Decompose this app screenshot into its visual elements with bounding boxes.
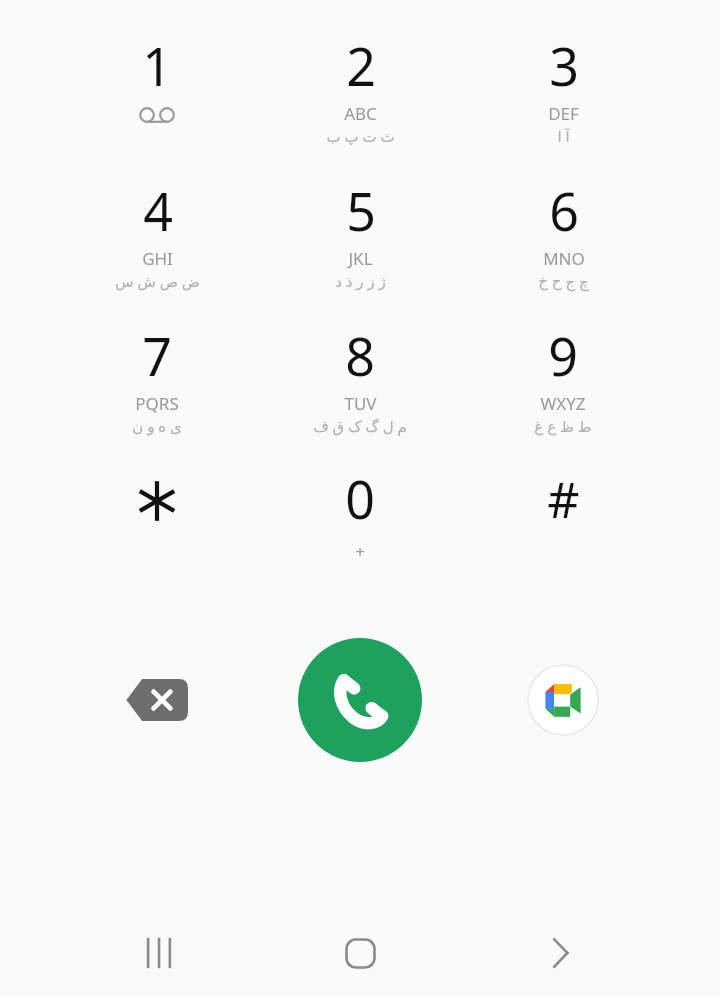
staticText: GHI xyxy=(142,247,173,270)
staticText: 7 xyxy=(142,320,172,391)
staticText: 8 xyxy=(345,320,375,391)
button[interactable]: 1 xyxy=(62,30,252,160)
staticText: ث ت پ ب xyxy=(326,126,395,146)
staticText: JKL xyxy=(348,247,373,270)
button[interactable]: 9 xyxy=(468,320,658,450)
staticText: ض ص ش س xyxy=(115,271,200,291)
staticText: 0 xyxy=(345,463,375,534)
staticText: ط ظ ع غ xyxy=(534,416,592,436)
button[interactable]: Home xyxy=(320,923,400,983)
staticText: 1 xyxy=(142,30,172,101)
staticText: + xyxy=(355,540,365,563)
button[interactable]: 2 xyxy=(265,30,455,160)
button[interactable]: Back xyxy=(520,923,600,983)
button[interactable]: 7 xyxy=(62,320,252,450)
staticText: MNO xyxy=(543,247,585,270)
button[interactable]: 5 xyxy=(265,175,455,305)
button[interactable]: # xyxy=(468,463,658,593)
button[interactable]: 0 xyxy=(265,463,455,593)
staticText: DEF xyxy=(548,102,579,125)
staticText: WXYZ xyxy=(540,392,586,415)
button[interactable]: 8 xyxy=(265,320,455,450)
staticText: م ل گ ک ق ف xyxy=(313,416,407,436)
button[interactable]: Video call xyxy=(527,664,599,736)
staticText: 9 xyxy=(548,320,578,391)
staticText: آ ا xyxy=(557,126,570,146)
staticText: TUV xyxy=(344,392,377,415)
button[interactable]: Backspace xyxy=(107,650,207,750)
button[interactable]: Call xyxy=(298,638,422,762)
staticText: 2 xyxy=(346,30,376,101)
staticText: 4 xyxy=(143,175,173,246)
button[interactable]: 6 xyxy=(468,175,658,305)
staticText: PQRS xyxy=(135,392,179,415)
staticText: 6 xyxy=(549,175,579,246)
staticText: ژ ز ر ذ د xyxy=(335,271,386,291)
button[interactable]: 4 xyxy=(62,175,252,305)
button[interactable]: 3 xyxy=(468,30,658,160)
staticText: چ ج ح خ xyxy=(538,271,589,291)
button[interactable]: Star xyxy=(62,463,252,593)
staticText: ABC xyxy=(344,102,377,125)
staticText: 3 xyxy=(549,30,579,101)
staticText: 5 xyxy=(346,175,376,246)
staticText: ی ه و ن xyxy=(132,416,182,436)
staticText: # xyxy=(547,465,580,533)
button[interactable]: Recents xyxy=(119,923,199,983)
